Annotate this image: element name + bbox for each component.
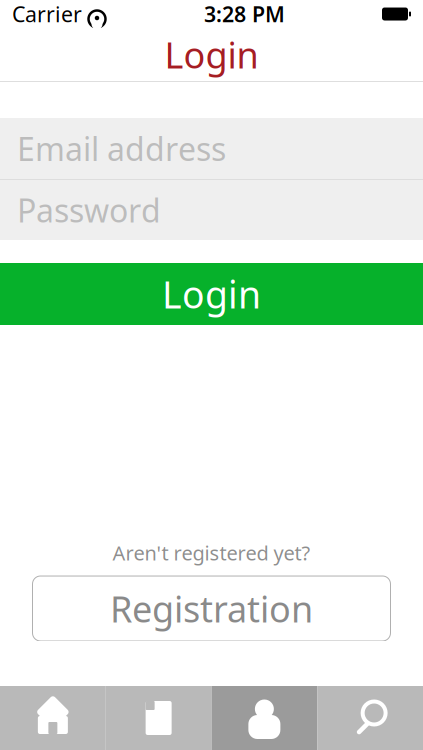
staticText: 3:28 PM (204, 0, 285, 28)
staticText: Registration (110, 585, 313, 632)
button[interactable]: Registration (32, 576, 390, 641)
button[interactable]: Email address (0, 118, 423, 179)
staticText: Aren't registered yet? (112, 539, 310, 566)
button[interactable]: Documents (106, 686, 212, 750)
button[interactable]: Home (0, 686, 106, 750)
staticText: Login (162, 269, 261, 319)
button[interactable]: Password (0, 180, 423, 240)
staticText: Carrier (12, 0, 82, 28)
staticText: Email address (17, 127, 226, 170)
staticText: Password (17, 189, 161, 231)
staticText: Login (164, 31, 258, 78)
button[interactable]: Search (317, 686, 423, 750)
button[interactable]: Login (0, 263, 423, 325)
button[interactable]: Profile (211, 686, 317, 750)
